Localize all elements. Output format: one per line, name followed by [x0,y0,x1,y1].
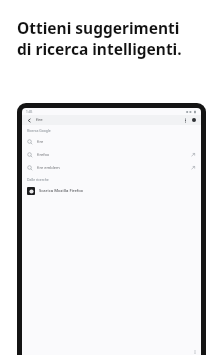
button[interactable]: More options [182,117,188,123]
staticText: fire [37,139,44,144]
staticText: Scarica Mozilla Firefox [39,188,84,194]
staticText: firefox [37,152,50,157]
button[interactable]: firefox [22,148,201,161]
button[interactable]: Account [191,117,197,123]
staticText: di ricerca intelligenti. [17,38,182,59]
button[interactable]: Back [26,117,32,123]
button[interactable]: fire emblem [22,161,201,174]
staticText: Ottieni suggerimenti [17,17,180,38]
staticText: fire [36,117,43,123]
staticText: Ricerca Google [27,128,51,133]
button[interactable]: Scarica Mozilla Firefox [22,184,201,197]
staticText: 1:45 [26,110,33,114]
button[interactable]: fire [22,135,201,148]
staticText: fire emblem [37,165,60,170]
staticText: Dalle ricerche [27,177,49,182]
